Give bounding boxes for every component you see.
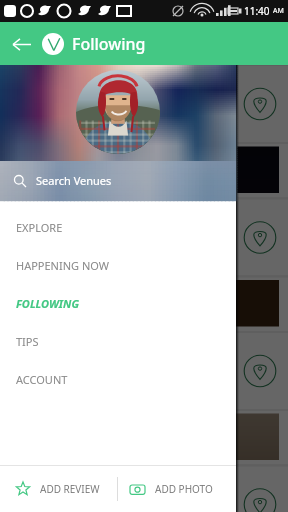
- button[interactable]: EXPLORE: [0, 208, 236, 246]
- staticText: HAPPENING NOW: [16, 258, 109, 273]
- button[interactable]: Search Venues: [0, 161, 236, 200]
- staticText: EXPLORE: [16, 220, 63, 235]
- staticText: ADD REVIEW: [40, 482, 100, 496]
- button[interactable]: TIPS: [0, 322, 236, 360]
- button[interactable]: HAPPENING NOW: [0, 246, 236, 284]
- button[interactable]: ADD REVIEW: [0, 466, 117, 512]
- staticText: Search Venues: [36, 173, 112, 188]
- button[interactable]: ACCOUNT: [0, 360, 236, 398]
- staticText: ADD PHOTO: [155, 482, 213, 496]
- staticText: ACCOUNT: [16, 372, 68, 387]
- staticText: AM: [273, 6, 284, 16]
- button[interactable]: ADD PHOTO: [118, 466, 236, 512]
- staticText: Following: [72, 33, 146, 55]
- button[interactable]: FOLLOWING: [0, 284, 236, 322]
- staticText: FOLLOWING: [16, 296, 79, 311]
- staticText: TIPS: [16, 334, 39, 349]
- button[interactable]: Back: [0, 23, 42, 65]
- staticText: 11:40: [244, 4, 273, 18]
